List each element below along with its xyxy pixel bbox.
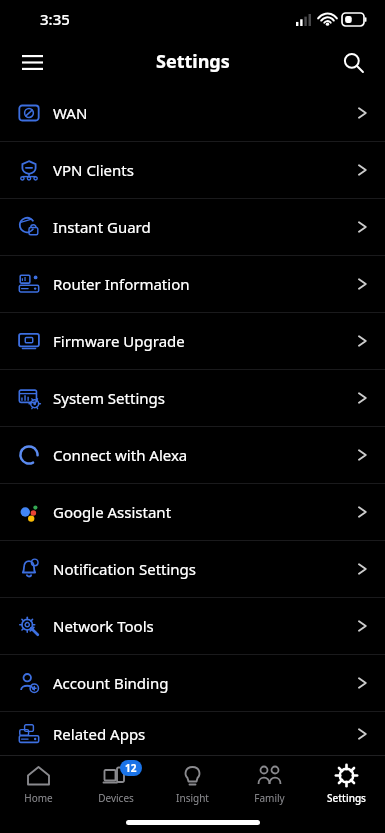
button[interactable]: Home: [0, 756, 77, 811]
staticText: Account Binding: [53, 673, 169, 693]
staticText: Settings: [327, 791, 366, 805]
staticText: Router Information: [53, 274, 190, 294]
button[interactable]: Account Binding: [0, 655, 385, 711]
button[interactable]: Notification Settings: [0, 541, 385, 597]
staticText: Related Apps: [53, 724, 146, 744]
button[interactable]: VPN Clients: [0, 142, 385, 198]
staticText: Insight: [176, 791, 209, 805]
button[interactable]: Search: [331, 40, 375, 84]
button[interactable]: Router Information: [0, 256, 385, 312]
button[interactable]: WAN: [0, 85, 385, 141]
staticText: System Settings: [53, 388, 165, 408]
staticText: Family: [254, 791, 285, 805]
staticText: Connect with Alexa: [53, 445, 188, 465]
staticText: Google Assistant: [53, 502, 172, 522]
staticText: Settings: [156, 49, 230, 74]
button[interactable]: Insight: [154, 756, 231, 811]
staticText: WAN: [53, 103, 88, 123]
button[interactable]: Instant Guard: [0, 199, 385, 255]
button[interactable]: Network Tools: [0, 598, 385, 654]
staticText: Network Tools: [53, 616, 154, 636]
staticText: Firmware Upgrade: [53, 331, 185, 351]
staticText: 12: [125, 761, 137, 775]
button[interactable]: Connect with Alexa: [0, 427, 385, 483]
button[interactable]: System Settings: [0, 370, 385, 426]
staticText: Devices: [98, 791, 134, 805]
button[interactable]: Google Assistant: [0, 484, 385, 540]
staticText: Home: [24, 791, 53, 805]
staticText: 3:35: [40, 9, 70, 29]
button[interactable]: Settings: [308, 756, 385, 811]
staticText: Notification Settings: [53, 559, 197, 579]
staticText: Instant Guard: [53, 217, 151, 237]
staticText: VPN Clients: [53, 160, 134, 180]
button[interactable]: Related Apps: [0, 712, 385, 755]
button[interactable]: Menu: [10, 40, 54, 84]
button[interactable]: 12: [77, 756, 154, 811]
button[interactable]: Firmware Upgrade: [0, 313, 385, 369]
button[interactable]: Family: [231, 756, 308, 811]
